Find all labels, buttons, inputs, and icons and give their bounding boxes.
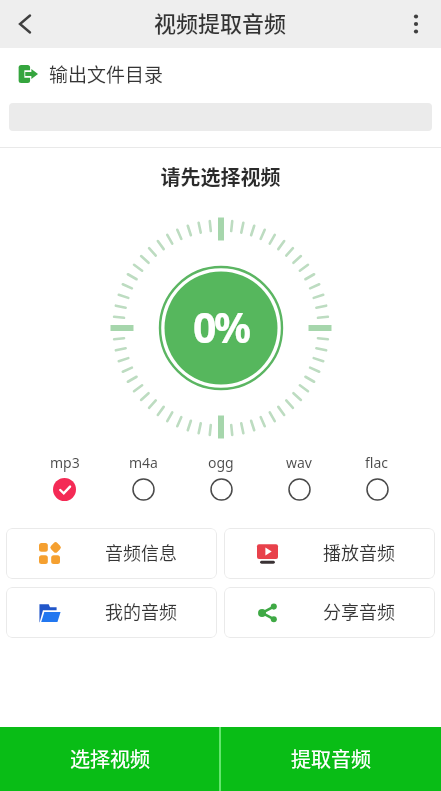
- button[interactable]: m4a: [104, 453, 182, 501]
- button[interactable]: More options: [393, 0, 441, 48]
- staticText: 视频提取音频: [154, 6, 287, 38]
- button[interactable]: 选择视频: [0, 727, 219, 791]
- button[interactable]: mp3: [25, 453, 104, 501]
- staticText: 我的音频: [105, 598, 177, 624]
- button[interactable]: 音频信息: [6, 528, 217, 579]
- staticText: 音频信息: [105, 539, 177, 565]
- staticText: 请先选择视频: [0, 162, 441, 191]
- button[interactable]: 输出文件目录: [0, 54, 441, 94]
- staticText: 播放音频: [323, 539, 395, 565]
- button[interactable]: ogg: [182, 453, 260, 501]
- staticText: mp3: [50, 453, 80, 472]
- button[interactable]: 分享音频: [224, 587, 435, 638]
- staticText: m4a: [129, 453, 158, 472]
- button[interactable]: 提取音频: [221, 727, 441, 791]
- staticText: wav: [286, 453, 312, 472]
- button[interactable]: 我的音频: [6, 587, 217, 638]
- button[interactable]: Back: [0, 0, 48, 48]
- staticText: 0%: [193, 299, 249, 355]
- staticText: 分享音频: [323, 598, 395, 624]
- staticText: ogg: [208, 453, 234, 472]
- button[interactable]: flac: [338, 453, 416, 501]
- button[interactable]: wav: [260, 453, 338, 501]
- staticText: 选择视频: [70, 744, 150, 773]
- button[interactable]: 播放音频: [224, 528, 435, 579]
- staticText: flac: [365, 453, 389, 472]
- staticText: 提取音频: [291, 744, 371, 773]
- staticText: 输出文件目录: [49, 60, 164, 88]
